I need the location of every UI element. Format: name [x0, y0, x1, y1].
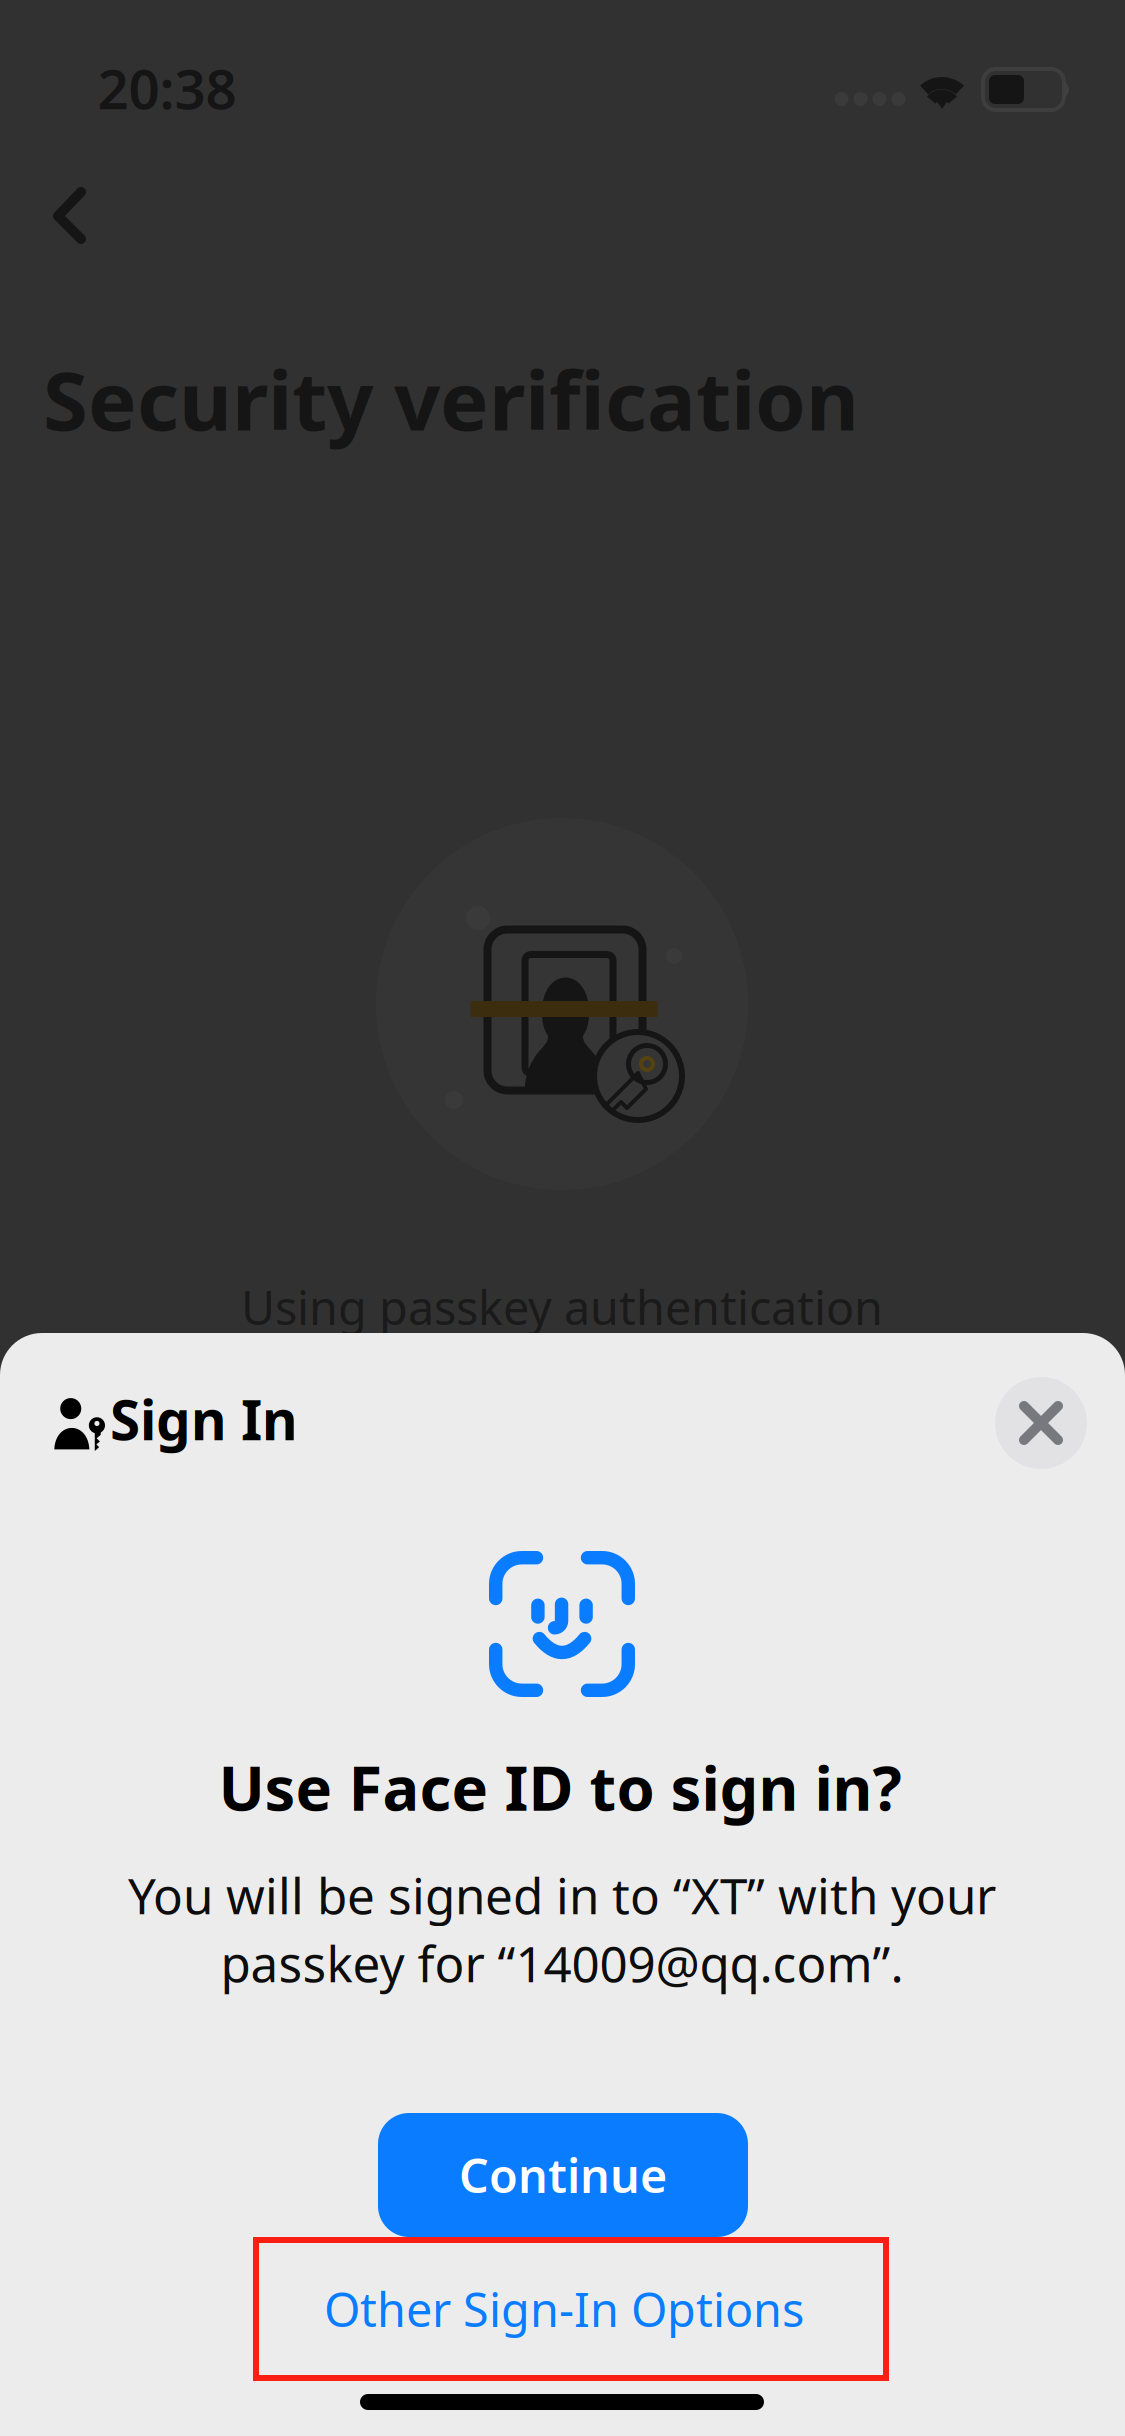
- staticText: Using passkey authentication: [241, 1276, 883, 1338]
- button[interactable]: Close: [995, 1377, 1087, 1469]
- staticText: Sign In: [110, 1383, 298, 1455]
- staticText: Security verification: [43, 345, 859, 453]
- staticText: You will be signed in to “XT” with your: [128, 1862, 996, 1928]
- button[interactable]: Back: [3, 154, 127, 278]
- button[interactable]: Other Sign-In Options: [256, 2240, 886, 2378]
- staticText: 20:38: [97, 52, 236, 124]
- staticText: passkey for “14009@qq.com”.: [220, 1930, 903, 1996]
- staticText: Continue: [459, 2144, 667, 2206]
- staticText: Other Sign-In Options: [324, 2278, 804, 2340]
- button[interactable]: Continue: [378, 2113, 748, 2237]
- staticText: Use Face ID to sign in?: [218, 1746, 901, 1828]
